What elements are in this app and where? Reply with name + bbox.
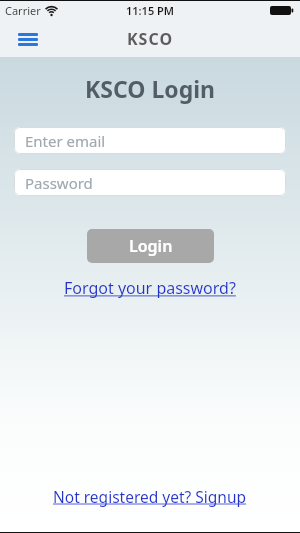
button[interactable]: Forgot your password? [64, 277, 236, 299]
button[interactable] [12, 26, 44, 52]
staticText: KSCO [127, 28, 174, 50]
staticText: Not registered yet? Signup [53, 486, 247, 507]
staticText: Carrier [5, 3, 41, 18]
button[interactable]: Password [14, 169, 286, 196]
staticText: Enter email [25, 131, 106, 151]
button[interactable]: Not registered yet? Signup [53, 486, 247, 507]
button[interactable]: Enter email [14, 127, 286, 154]
staticText: Login [129, 235, 173, 257]
staticText: Password [25, 173, 93, 193]
button[interactable]: Login [87, 229, 214, 263]
staticText: KSCO Login [85, 73, 216, 104]
staticText: Forgot your password? [64, 277, 236, 299]
staticText: 11:15 PM [126, 3, 175, 18]
